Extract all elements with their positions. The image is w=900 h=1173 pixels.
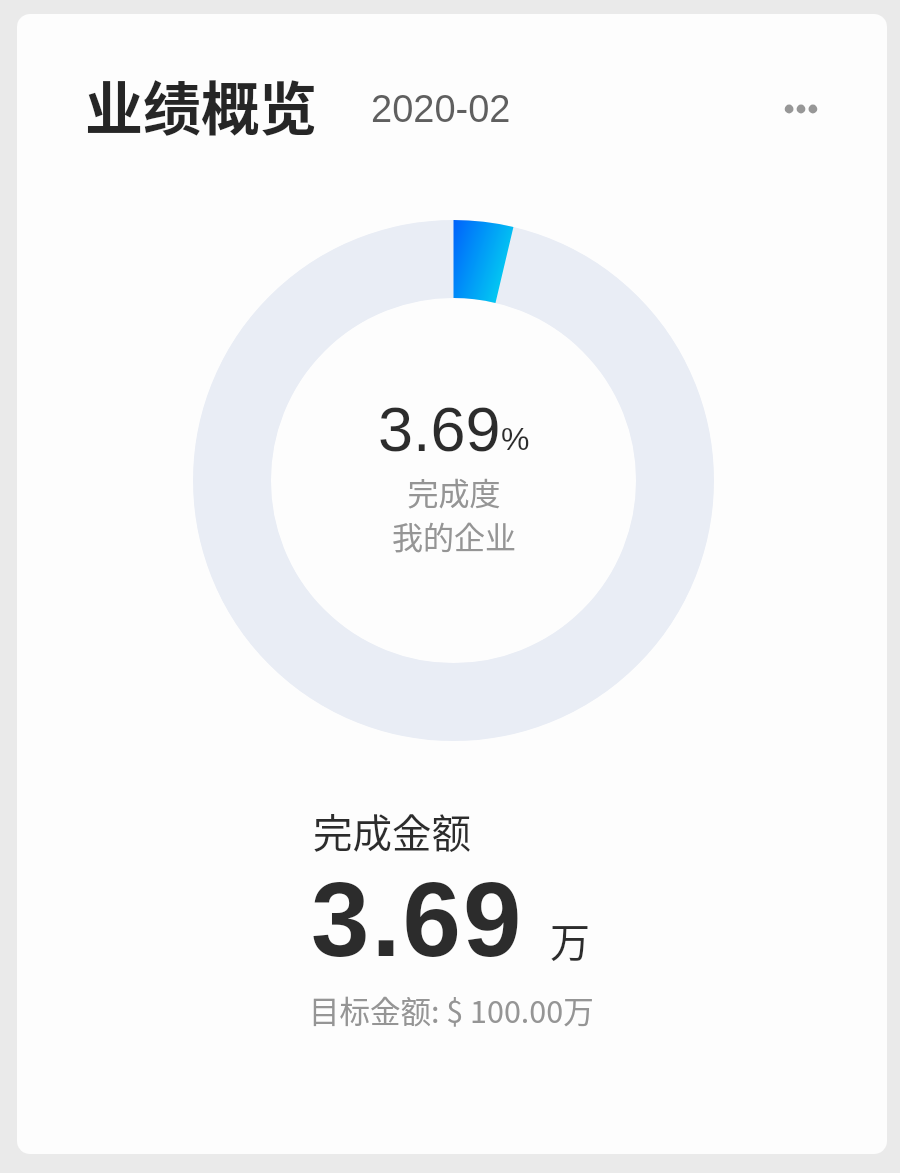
button[interactable]: Completion rate 3.69 percent <box>193 220 714 741</box>
staticText: 完成度 我的企业 <box>392 469 516 558</box>
staticText: 3.69 <box>311 861 524 978</box>
button[interactable]: 业绩概览 <box>85 63 318 147</box>
staticText: 目标金额: $ 100.00万 <box>309 988 594 1032</box>
staticText: 2020-02 <box>371 88 511 130</box>
staticText: % <box>501 421 530 457</box>
staticText: 3.69 <box>378 394 501 464</box>
button[interactable]: 完成金额 <box>297 784 627 1054</box>
staticText: 万 <box>550 911 590 969</box>
staticText: 完成金额 <box>313 802 471 859</box>
button[interactable]: More options <box>771 79 831 139</box>
